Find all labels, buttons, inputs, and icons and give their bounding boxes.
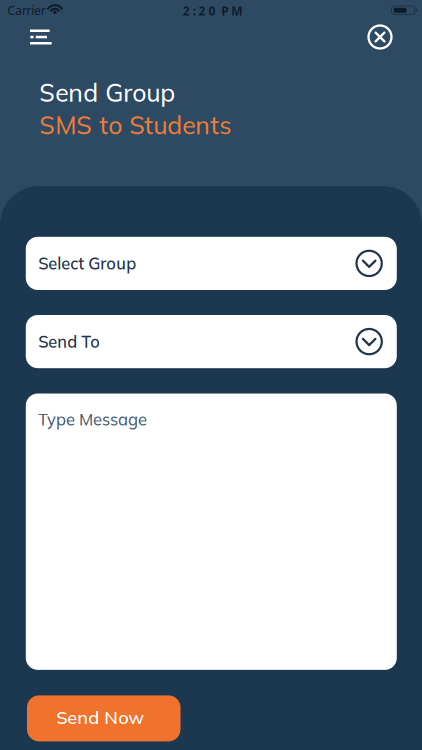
- staticText: :: [193, 3, 196, 19]
- staticText: P: [221, 3, 228, 19]
- button[interactable]: Send Now: [27, 695, 180, 741]
- staticText: M: [231, 3, 242, 19]
- button[interactable]: Menu: [22, 21, 60, 52]
- staticText: Send Group: [39, 77, 175, 108]
- staticText: 0: [208, 3, 215, 19]
- button[interactable]: Type Message: [26, 393, 397, 670]
- staticText: Type Message: [38, 409, 147, 430]
- staticText: 2: [199, 3, 206, 19]
- staticText: 2: [183, 3, 190, 19]
- staticText: Send To: [38, 331, 100, 352]
- staticText: SMS to Students: [39, 109, 231, 140]
- button[interactable]: Select Group: [26, 237, 397, 290]
- button[interactable]: Close: [360, 17, 399, 56]
- staticText: Send Now: [56, 706, 144, 729]
- staticText: Select Group: [38, 253, 136, 274]
- button[interactable]: Send To: [26, 315, 397, 368]
- staticText: Carrier: [7, 2, 46, 18]
